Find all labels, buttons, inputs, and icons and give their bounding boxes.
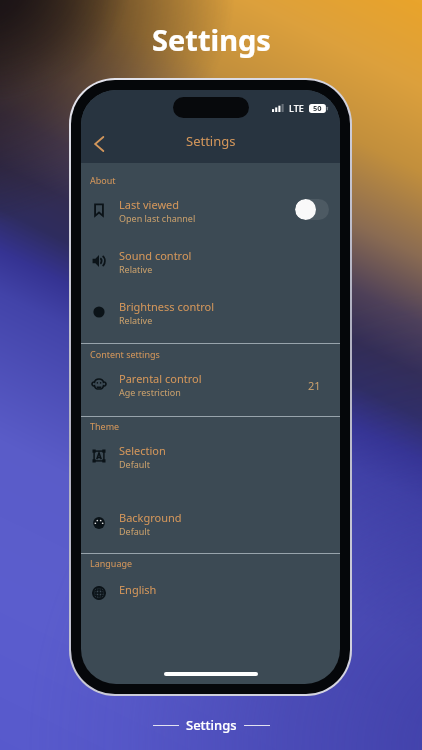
staticText: Default <box>119 525 150 537</box>
button[interactable]: English <box>81 574 340 612</box>
staticText: Language <box>90 557 133 569</box>
staticText: Settings <box>152 20 271 59</box>
staticText: Default <box>119 458 150 470</box>
staticText: Age restriction <box>119 386 181 398</box>
button[interactable]: Parental control <box>81 363 340 414</box>
staticText: Brightness control <box>119 299 214 314</box>
staticText: 50 <box>313 103 322 113</box>
button[interactable]: Back <box>84 129 113 158</box>
staticText: Relative <box>119 263 153 275</box>
button[interactable]: Background <box>81 502 340 553</box>
staticText: Parental control <box>119 371 202 386</box>
button[interactable]: Toggle last viewed <box>295 199 329 220</box>
staticText: Last viewed <box>119 197 180 212</box>
staticText: Sound control <box>119 248 192 263</box>
button[interactable]: Brightness control <box>81 291 340 342</box>
staticText: Background <box>119 510 182 525</box>
button[interactable]: Sound control <box>81 240 340 291</box>
button[interactable]: Selection <box>81 435 340 486</box>
staticText: English <box>119 582 157 597</box>
staticText: Content settings <box>90 348 160 360</box>
staticText: Settings <box>186 132 236 150</box>
staticText: LTE <box>289 102 304 114</box>
staticText: 21 <box>308 378 321 393</box>
staticText: Relative <box>119 314 153 326</box>
staticText: Theme <box>90 420 120 432</box>
staticText: Settings <box>186 716 237 734</box>
staticText: Open last channel <box>119 212 196 224</box>
staticText: About <box>90 174 116 186</box>
staticText: Selection <box>119 443 166 458</box>
button[interactable]: Last viewed <box>81 189 340 240</box>
